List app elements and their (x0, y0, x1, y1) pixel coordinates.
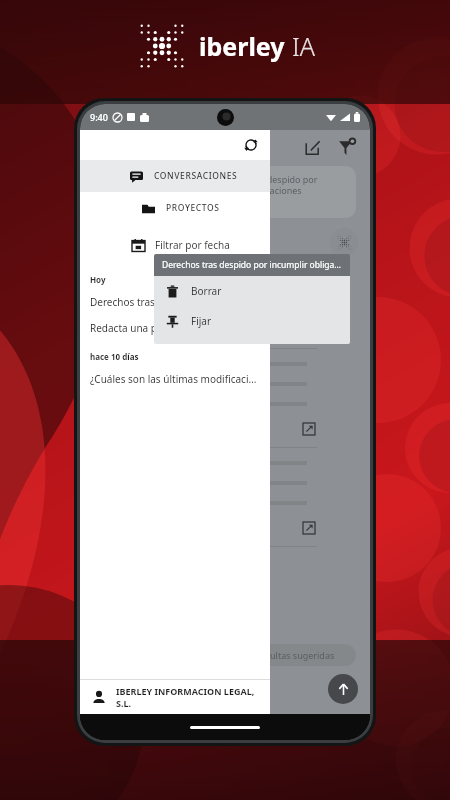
button[interactable]: Abrir enlace (301, 421, 317, 437)
staticText: Consultas sugeridas (249, 649, 335, 661)
staticText: IBERLEY INFORMACION LEGAL, S.L. (116, 685, 270, 709)
staticText: Derechos tras despido por incumplir obli… (90, 295, 260, 309)
staticText: ¿Cuáles son las últimas modificaci… (90, 372, 257, 386)
staticText: Fijar (191, 314, 212, 328)
button[interactable]: ¿Cuáles son las últimas modificaci… (80, 366, 270, 392)
staticText: CONVERSACIONES (154, 170, 238, 182)
button[interactable]: Fijar (154, 306, 350, 336)
staticText: IA (292, 29, 315, 63)
button[interactable]: Redacta una propuesta de contrato (80, 315, 270, 341)
staticText: Derechos tras despido por incumplir obli… (206, 173, 346, 197)
button[interactable]: Filtrar (334, 134, 360, 160)
button[interactable]: Ir arriba (328, 674, 358, 704)
staticText: PROYECTOS (166, 202, 220, 214)
button[interactable]: Borrar (154, 276, 350, 306)
button[interactable]: Sincronizar (240, 134, 262, 156)
staticText: iberley (199, 29, 285, 63)
staticText: Borrar (191, 284, 222, 298)
staticText: hace 10 días (90, 351, 139, 362)
staticText: 9:40 (90, 111, 108, 123)
staticText: Filtrar por fecha (155, 238, 230, 252)
button[interactable]: Filtrar por fecha (80, 230, 270, 260)
button[interactable]: IBERLEY INFORMACION LEGAL, S.L. (80, 680, 270, 714)
button[interactable]: Nueva conversación (300, 135, 324, 159)
button[interactable]: PROYECTOS (80, 192, 270, 224)
button[interactable]: Consultas sugeridas (228, 644, 356, 666)
button[interactable]: Abrir enlace (301, 520, 317, 536)
button[interactable]: Derechos tras despido por incumplir obli… (80, 289, 270, 315)
staticText: Hoy (90, 274, 106, 285)
staticText: Redacta una propuesta de contrato (90, 321, 256, 335)
staticText: Derechos tras despido por incumplir obli… (162, 259, 342, 271)
button[interactable]: CONVERSACIONES (80, 160, 270, 192)
